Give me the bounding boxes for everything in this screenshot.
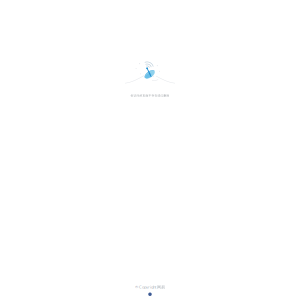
staticText: 你访问的页面不存在或已删除 <box>130 94 169 97</box>
staticText: © Copyright 网易 <box>135 284 165 289</box>
